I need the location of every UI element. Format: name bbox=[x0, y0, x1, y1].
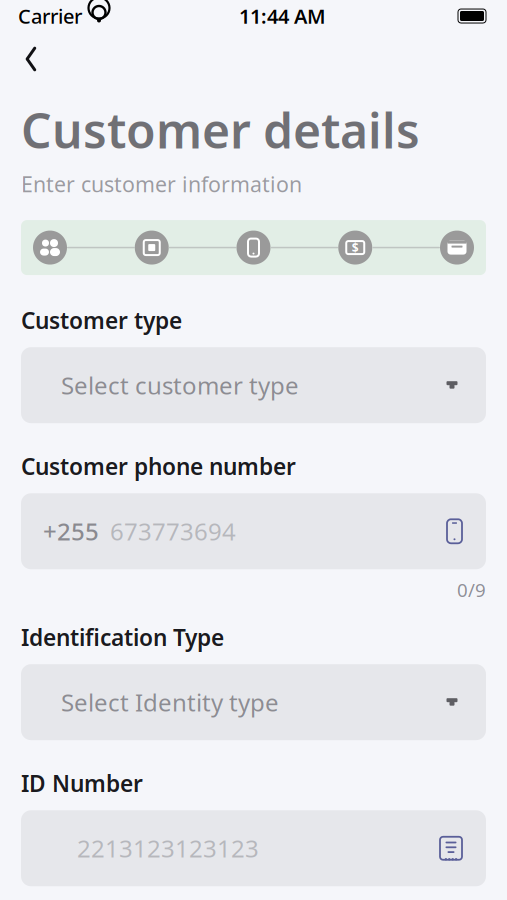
button[interactable]: Select customer type bbox=[21, 347, 486, 423]
staticText: Select customer type bbox=[61, 369, 299, 401]
button[interactable]: +255 bbox=[21, 493, 486, 569]
staticText: Customer phone number bbox=[21, 451, 296, 481]
staticText: 2213123123123 bbox=[77, 832, 259, 864]
button[interactable]: Select Identity type bbox=[21, 664, 486, 740]
staticText: Customer details bbox=[21, 98, 420, 162]
staticText: Select Identity type bbox=[61, 686, 279, 718]
button[interactable]: Back bbox=[14, 42, 48, 76]
staticText: 673773694 bbox=[110, 515, 236, 547]
staticText: Carrier bbox=[18, 3, 82, 29]
staticText: +255 bbox=[43, 515, 99, 547]
button[interactable]: 2213123123123 bbox=[21, 810, 486, 886]
staticText: Customer type bbox=[21, 305, 182, 335]
staticText: ID Number bbox=[21, 768, 143, 798]
staticText: Enter customer information bbox=[21, 170, 302, 198]
staticText: 0/9 bbox=[457, 577, 486, 602]
staticText: $ bbox=[352, 240, 359, 255]
staticText: Identification Type bbox=[21, 622, 224, 652]
staticText: 11:44 AM bbox=[239, 3, 326, 29]
